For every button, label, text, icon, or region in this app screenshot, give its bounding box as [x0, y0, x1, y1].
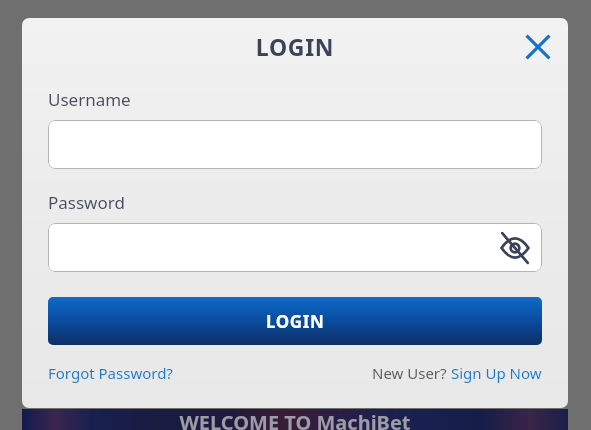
button[interactable]: Sign Up Now — [451, 361, 542, 385]
button[interactable]: Forgot Password? — [48, 361, 173, 385]
staticText: New User? — [372, 363, 451, 383]
button[interactable]: Close — [516, 25, 560, 69]
button[interactable]: Username field — [48, 120, 542, 169]
staticText: LOGIN — [22, 31, 568, 62]
button[interactable]: Show password — [495, 228, 535, 268]
button[interactable]: LOGIN — [48, 297, 542, 345]
staticText: LOGIN — [266, 310, 325, 333]
staticText: WELCOME TO MachiBet — [22, 409, 568, 430]
button[interactable]: Password field — [48, 223, 542, 272]
staticText: Password — [48, 191, 125, 214]
staticText: Sign Up Now — [451, 363, 542, 383]
staticText: Username — [48, 88, 131, 111]
staticText: Forgot Password? — [48, 363, 173, 383]
